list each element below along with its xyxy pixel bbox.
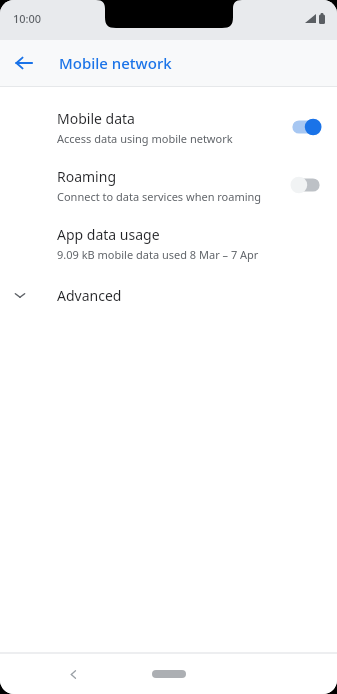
staticText: Roaming [57,167,116,186]
button[interactable]: Roaming [0,156,337,214]
staticText: Access data using mobile network [57,131,233,146]
button[interactable]: Home [147,665,191,683]
staticText: Connect to data services when roaming [57,189,262,204]
staticText: Advanced [57,286,122,305]
staticText: 10:00 [13,11,42,26]
staticText: 9.09 kB mobile data used 8 Mar – 7 Apr [57,247,259,262]
button[interactable]: Back [60,661,86,687]
button[interactable]: Advanced [0,272,337,318]
staticText: Mobile data [57,109,135,128]
button[interactable]: Mobile data [0,98,337,156]
button[interactable]: On [289,116,323,138]
button[interactable]: Back [8,47,40,79]
button[interactable]: Off [289,174,323,196]
staticText: Mobile network [59,53,172,73]
button[interactable]: App data usage [0,214,337,272]
staticText: App data usage [57,225,160,244]
